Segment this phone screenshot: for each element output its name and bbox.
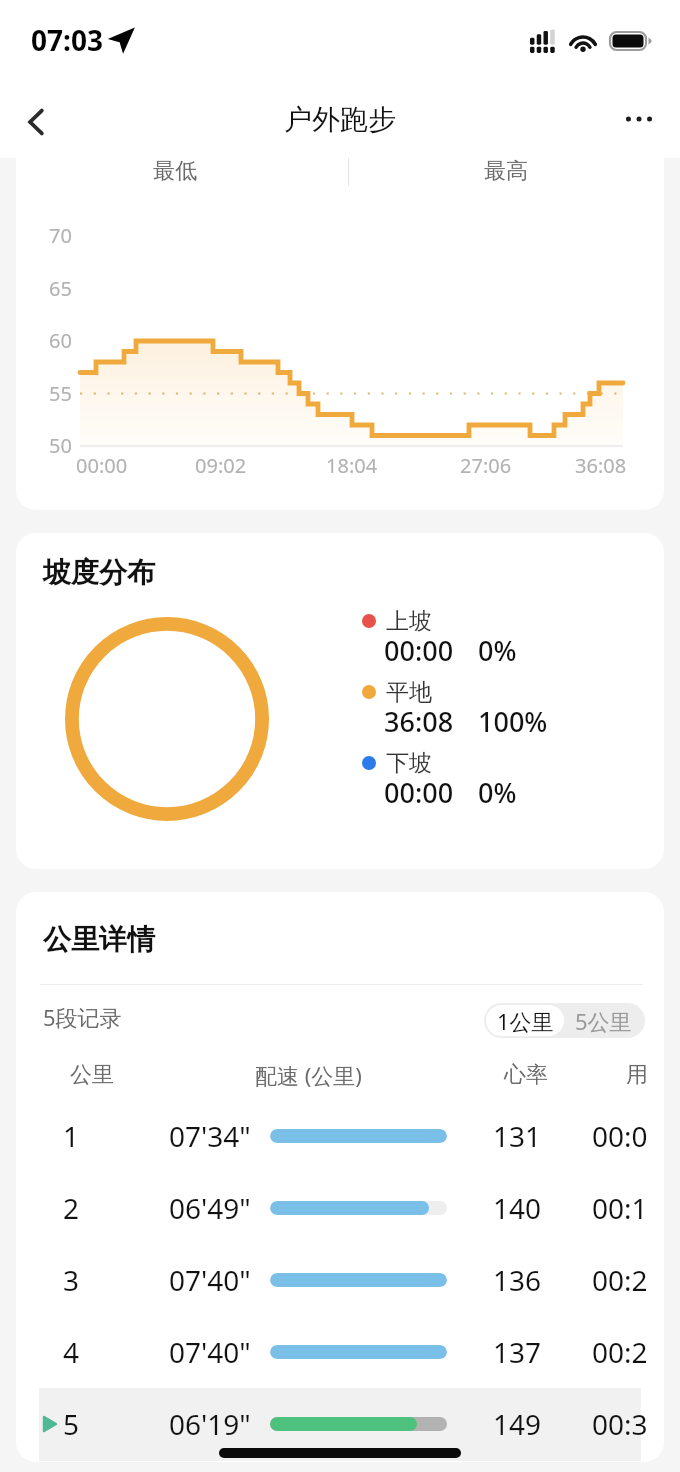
button[interactable]: 1公里 <box>486 1005 564 1036</box>
staticText: 00:00 <box>76 452 128 479</box>
staticText: 00:0 <box>592 1117 648 1155</box>
staticText: 3 <box>63 1261 80 1299</box>
staticText: 2 <box>63 1189 80 1227</box>
staticText: 55 <box>49 380 72 407</box>
staticText: 100% <box>478 703 548 739</box>
staticText: 09:02 <box>195 452 247 479</box>
staticText: 用 <box>626 1061 648 1089</box>
button[interactable]: 1 <box>16 1100 664 1172</box>
staticText: 心率 <box>504 1061 548 1089</box>
staticText: 36:08 <box>384 703 454 739</box>
staticText: 上坡 <box>386 607 432 636</box>
staticText: 1 <box>63 1117 80 1155</box>
staticText: 00:2 <box>592 1261 648 1299</box>
staticText: 27:06 <box>460 452 512 479</box>
staticText: 4 <box>63 1333 80 1371</box>
staticText: 下坡 <box>386 749 432 778</box>
staticText: 65 <box>49 275 72 302</box>
staticText: 最高 <box>484 158 528 185</box>
staticText: 户外跑步 <box>284 102 396 137</box>
staticText: 07:03 <box>31 21 103 59</box>
staticText: 18:04 <box>326 452 378 479</box>
staticText: 140 <box>493 1189 542 1227</box>
button[interactable]: 2 <box>16 1172 664 1244</box>
button[interactable]: Back <box>8 93 66 151</box>
staticText: 0% <box>478 632 517 668</box>
staticText: 5段记录 <box>43 1002 122 1032</box>
staticText: 00:2 <box>592 1333 648 1371</box>
staticText: 07'40" <box>169 1261 251 1299</box>
staticText: 131 <box>493 1117 542 1155</box>
staticText: 公里详情 <box>43 922 155 957</box>
staticText: 06'19" <box>169 1405 251 1443</box>
staticText: 00:00 <box>384 774 454 810</box>
button[interactable]: 5 <box>16 1388 664 1460</box>
staticText: 00:1 <box>592 1189 648 1227</box>
staticText: 配速 (公里) <box>255 1060 362 1090</box>
staticText: 60 <box>49 327 72 354</box>
staticText: 最低 <box>153 158 197 185</box>
staticText: 5公里 <box>575 1006 632 1036</box>
staticText: 07'34" <box>169 1117 251 1155</box>
button[interactable]: 3 <box>16 1244 664 1316</box>
staticText: 平地 <box>386 678 432 707</box>
button[interactable]: 4 <box>16 1316 664 1388</box>
button[interactable]: 5公里 <box>564 1005 643 1036</box>
staticText: 136 <box>493 1261 542 1299</box>
staticText: 坡度分布 <box>43 555 155 590</box>
staticText: 1公里 <box>497 1006 554 1036</box>
staticText: 5 <box>63 1405 80 1443</box>
staticText: 137 <box>493 1333 542 1371</box>
staticText: 00:3 <box>592 1405 648 1443</box>
staticText: 06'49" <box>169 1189 251 1227</box>
staticText: 00:00 <box>384 632 454 668</box>
staticText: 07'40" <box>169 1333 251 1371</box>
staticText: 0% <box>478 774 517 810</box>
staticText: 70 <box>49 222 72 249</box>
staticText: 50 <box>49 432 72 459</box>
button[interactable]: More options <box>610 93 668 151</box>
staticText: 公里 <box>70 1061 114 1089</box>
staticText: 36:08 <box>575 452 627 479</box>
staticText: 149 <box>493 1405 542 1443</box>
